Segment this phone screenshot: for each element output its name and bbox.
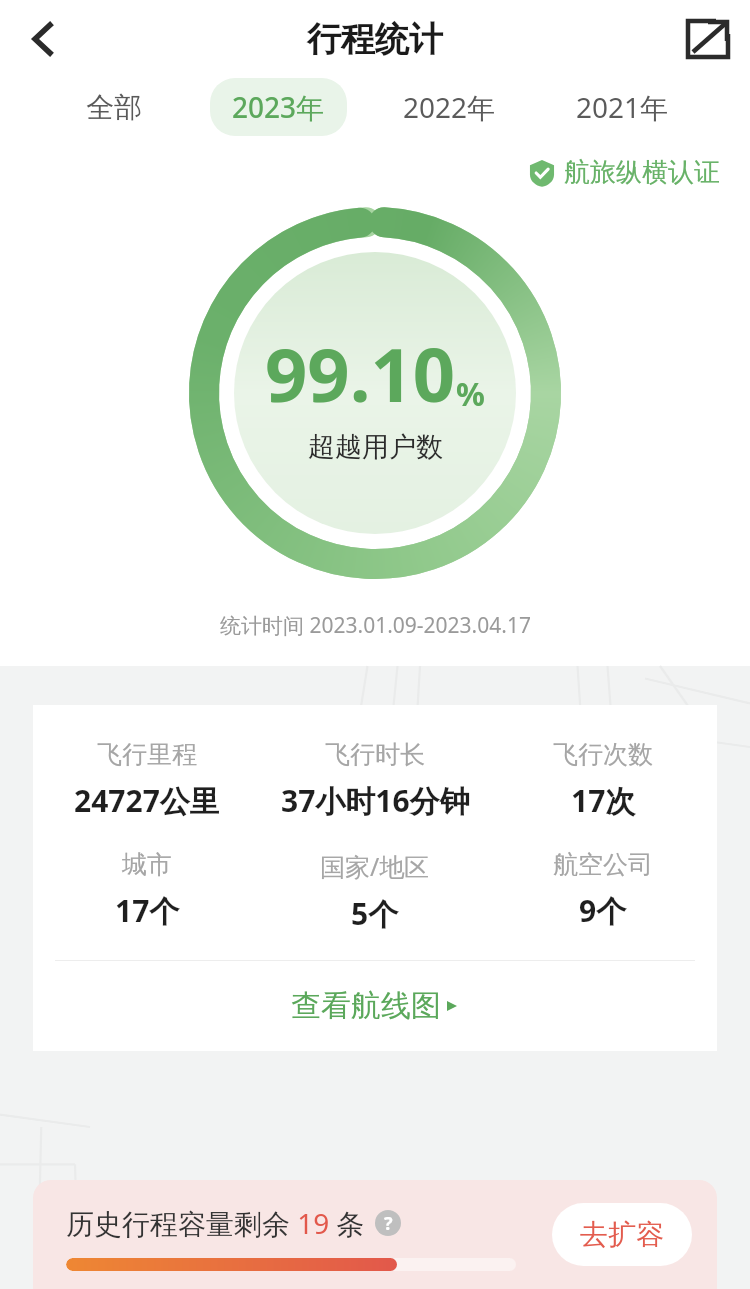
staticText: 国家/地区 — [320, 849, 430, 883]
button[interactable]: Help — [375, 1210, 401, 1236]
staticText: 历史行程容量剩余 19 条 — [66, 1204, 365, 1242]
button[interactable]: 2022年 — [381, 78, 518, 136]
staticText: 37小时16分钟 — [281, 780, 470, 821]
staticText: 9个 — [579, 890, 627, 931]
button[interactable]: 去扩容 — [552, 1203, 692, 1266]
staticText: 行程统计 — [307, 18, 443, 61]
staticText: 飞行里程 — [97, 739, 197, 770]
staticText: 2022年 — [403, 88, 496, 126]
staticText: 2023年 — [232, 88, 325, 126]
button[interactable]: Share — [680, 11, 736, 67]
staticText: 航空公司 — [553, 849, 653, 880]
staticText: 查看航线图 — [291, 987, 441, 1025]
staticText: 超越用户数 — [308, 430, 443, 464]
staticText: ? — [384, 1211, 393, 1236]
staticText: 5个 — [351, 893, 399, 934]
staticText: 17个 — [115, 890, 180, 931]
staticText: % — [456, 372, 485, 416]
staticText: 飞行次数 — [553, 739, 653, 770]
button[interactable]: 2023年 — [210, 78, 347, 136]
staticText: 飞行时长 — [325, 739, 425, 770]
button[interactable]: 全部 — [64, 80, 164, 135]
staticText: 99.10 — [265, 323, 456, 424]
button[interactable]: Back — [14, 11, 70, 67]
staticText: 17次 — [571, 780, 636, 821]
staticText: 2021年 — [576, 88, 669, 126]
staticText: 航旅纵横认证 — [564, 156, 720, 189]
staticText: 去扩容 — [580, 1217, 664, 1252]
staticText: 24727公里 — [74, 780, 220, 821]
staticText: 城市 — [122, 849, 172, 880]
staticText: 全部 — [86, 90, 142, 125]
button[interactable]: 航旅纵横认证 — [528, 156, 720, 189]
button[interactable]: 查看航线图 — [33, 961, 717, 1051]
button[interactable]: 2021年 — [554, 78, 691, 136]
staticText: 统计时间 2023.01.09-2023.04.17 — [220, 611, 531, 640]
